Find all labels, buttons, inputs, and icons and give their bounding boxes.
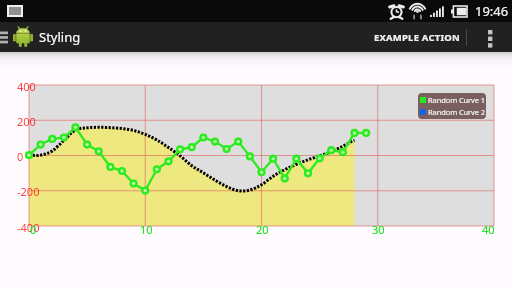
button[interactable]: Styling — [0, 22, 512, 52]
staticText: 400 — [17, 79, 36, 94]
staticText: 30 — [372, 222, 385, 237]
staticText: 200 — [17, 114, 36, 129]
staticText: EXAMPLE ACTION — [374, 31, 460, 44]
staticText: Random Curve 2 — [428, 107, 485, 117]
staticText: 19:46 — [475, 2, 509, 20]
staticText: Random Curve 1 — [428, 95, 485, 105]
staticText: 0 — [17, 149, 24, 164]
staticText: 0 — [30, 222, 37, 237]
staticText: 40 — [482, 222, 495, 237]
staticText: -400 — [17, 220, 40, 235]
staticText: 20 — [256, 222, 269, 237]
staticText: -200 — [17, 184, 40, 199]
button[interactable]: More options — [467, 22, 512, 52]
button[interactable]: Random Curve 1 — [418, 93, 486, 119]
staticText: 10 — [140, 222, 153, 237]
staticText: Styling — [39, 28, 81, 46]
button[interactable]: EXAMPLE ACTION — [364, 22, 466, 52]
